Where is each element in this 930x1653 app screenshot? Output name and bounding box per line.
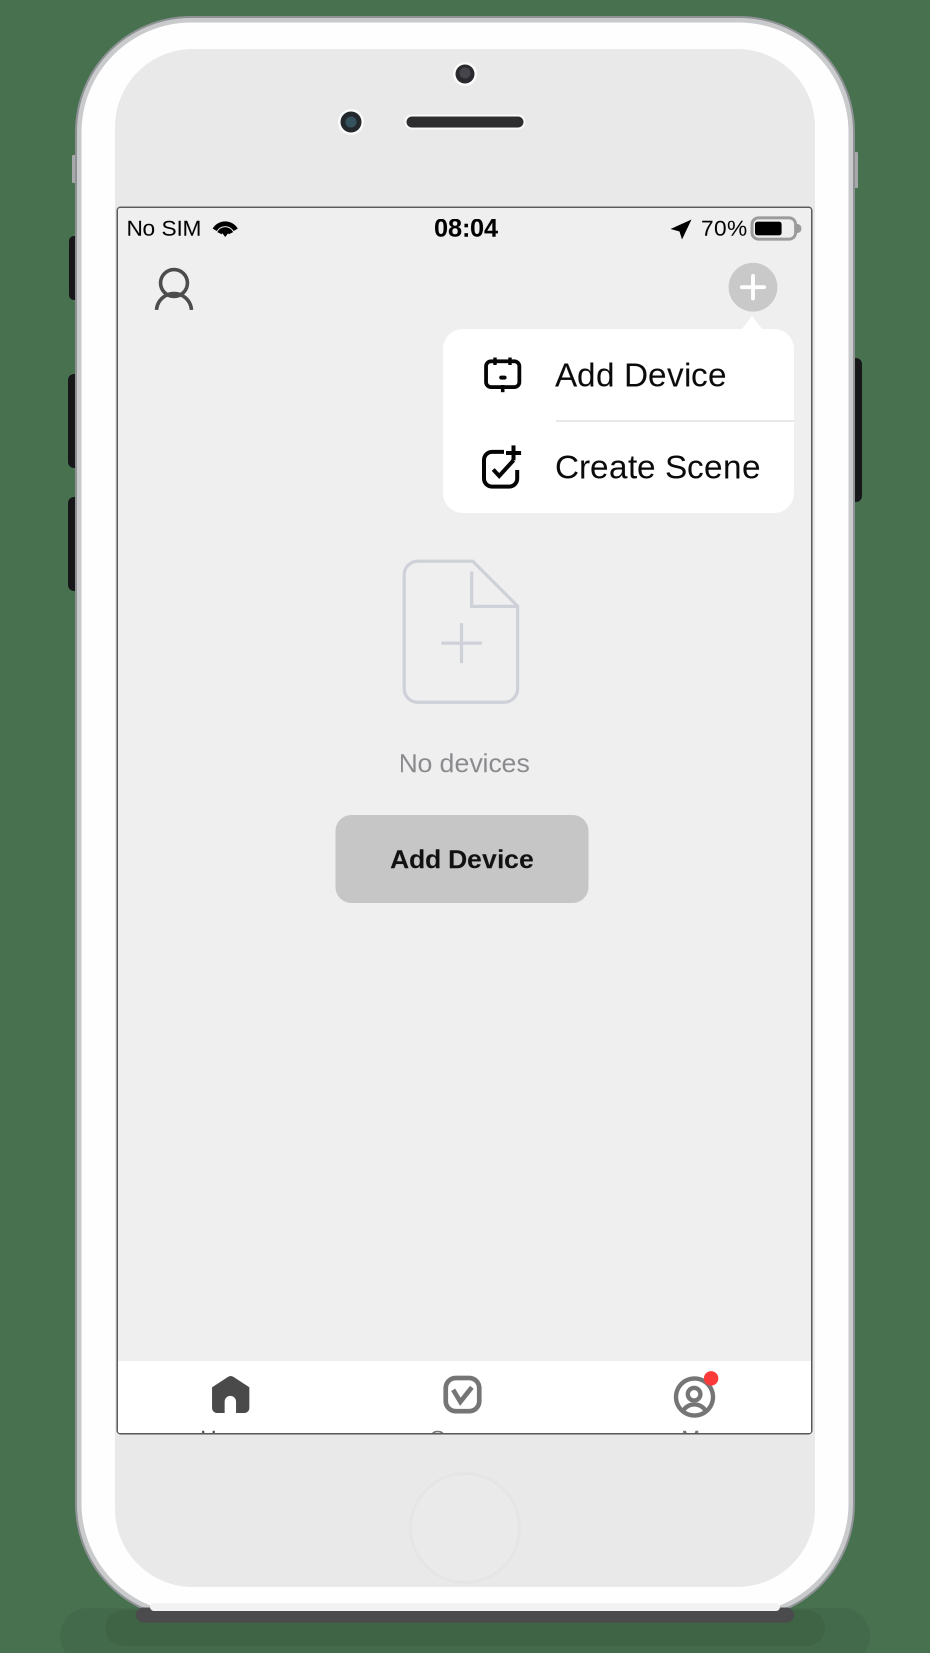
button[interactable]: My <box>580 1361 811 1491</box>
staticText: 70% <box>701 215 747 241</box>
button[interactable]: Add Device <box>443 329 794 421</box>
button[interactable]: Scene <box>349 1361 580 1491</box>
button[interactable]: Create Scene <box>443 421 794 513</box>
staticText: 08:04 <box>434 214 498 242</box>
staticText: Scene <box>430 1425 495 1451</box>
button[interactable]: Profile <box>144 259 204 325</box>
staticText: Home <box>200 1425 261 1451</box>
button[interactable]: Add Device <box>335 815 588 903</box>
staticText: My <box>681 1425 711 1451</box>
button[interactable]: Home <box>118 1361 349 1491</box>
staticText: No devices <box>398 748 529 778</box>
staticText: No SIM <box>126 215 201 241</box>
staticText: Add Device <box>555 356 727 394</box>
staticText: Create Scene <box>555 448 761 486</box>
button[interactable]: Add <box>726 260 780 314</box>
staticText: Add Device <box>390 844 534 874</box>
